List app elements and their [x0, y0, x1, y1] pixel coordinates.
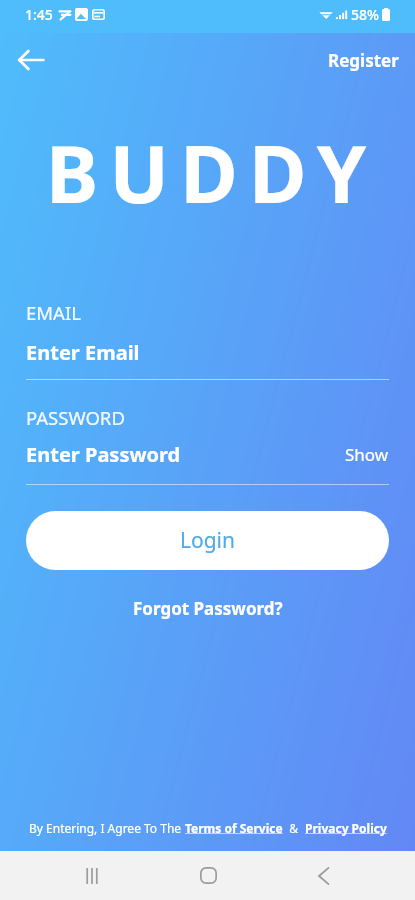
staticText: Enter Email [26, 339, 140, 366]
staticText: Forgot Password? [133, 597, 283, 620]
button[interactable]: Login [26, 511, 389, 570]
staticText: Terms of Service [185, 820, 283, 836]
button[interactable]: Back [8, 37, 54, 83]
button[interactable]: Privacy Policy [305, 820, 387, 836]
staticText: By Entering, I Agree To The [29, 820, 185, 836]
staticText: BUDDY [4, 119, 415, 227]
button[interactable]: Register [312, 41, 415, 80]
button[interactable]: Forgot Password? [125, 594, 291, 623]
staticText: Enter Password [26, 441, 181, 468]
button[interactable]: Recents [64, 851, 120, 900]
button[interactable]: Back [295, 851, 351, 900]
staticText: Register [328, 49, 399, 72]
staticText: 58% [351, 5, 379, 24]
staticText: & [283, 820, 305, 836]
staticText: Privacy Policy [305, 820, 387, 836]
button[interactable]: Show [345, 443, 389, 466]
button[interactable]: Terms of Service [185, 820, 283, 836]
button[interactable]: Home [180, 851, 236, 900]
staticText: 1:45 [25, 5, 53, 24]
staticText: EMAIL [26, 300, 81, 325]
staticText: Login [180, 526, 236, 555]
staticText: PASSWORD [26, 405, 125, 430]
staticText: Show [345, 443, 389, 466]
